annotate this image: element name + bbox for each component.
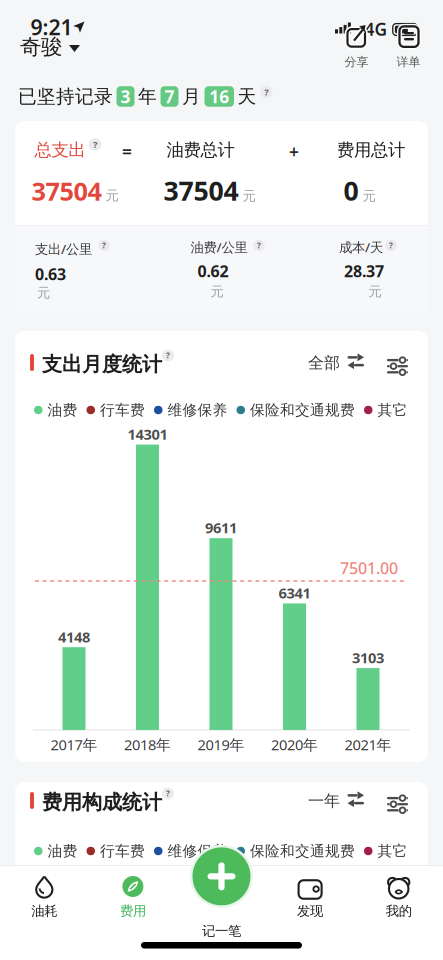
staticText: 保险和交通规费 — [250, 842, 355, 860]
button[interactable]: 说明 — [98, 240, 110, 251]
staticText: 其它 — [377, 401, 407, 419]
staticText: 成本/天 — [339, 238, 383, 256]
staticText: 已坚持记录 — [18, 85, 113, 108]
button[interactable]: 说明 — [162, 349, 174, 361]
staticText: 月 — [182, 85, 201, 108]
staticText: 3103 — [352, 648, 384, 667]
staticText: 分享 — [344, 55, 368, 69]
staticText: ? — [389, 240, 393, 251]
staticText: 天 — [237, 85, 256, 108]
staticText: 年 — [138, 85, 157, 108]
staticText: 37504 — [31, 174, 101, 208]
staticText: 油耗 — [31, 903, 57, 919]
staticText: 元 — [362, 188, 375, 204]
staticText: 行车费 — [100, 401, 145, 419]
button[interactable]: 全部 — [308, 353, 340, 373]
staticText: 费用 — [120, 903, 146, 919]
staticText: 奇骏 — [20, 34, 62, 60]
staticText: ? — [102, 240, 106, 251]
button[interactable]: 说明 — [260, 86, 272, 98]
staticText: 支出月度统计 — [42, 352, 162, 377]
staticText: 28.37 — [344, 260, 384, 282]
staticText: 0.62 — [197, 260, 228, 282]
staticText: 总支出 — [34, 139, 85, 161]
button[interactable]: 奇骏 — [20, 34, 80, 60]
button[interactable]: 说明 — [253, 240, 265, 251]
staticText: 详单 — [396, 55, 420, 69]
button[interactable]: 说明 — [89, 138, 101, 151]
staticText: 6341 — [278, 583, 310, 603]
staticText: 元 — [242, 188, 255, 204]
staticText: 维修保养 — [167, 401, 227, 419]
staticText: 37504 — [163, 173, 238, 208]
staticText: 油费 — [47, 842, 77, 860]
staticText: 4G — [364, 17, 387, 40]
staticText: 费用总计 — [337, 139, 405, 161]
staticText: 元 — [37, 284, 50, 301]
staticText: ? — [264, 86, 268, 98]
staticText: 元 — [105, 187, 118, 204]
staticText: 油费/公里 — [190, 238, 247, 256]
staticText: 维修保养 — [167, 842, 227, 860]
staticText: 行车费 — [100, 842, 145, 860]
staticText: 3 — [120, 85, 130, 108]
button[interactable]: 说明 — [385, 240, 397, 251]
staticText: 一年 — [308, 791, 340, 811]
button[interactable]: 筛选 — [387, 793, 408, 808]
staticText: 4148 — [58, 627, 90, 646]
button[interactable]: 我的 — [367, 875, 431, 923]
staticText: 0.63 — [35, 263, 66, 285]
button[interactable]: 分享 — [344, 24, 368, 69]
button[interactable]: 发现 — [278, 875, 342, 923]
staticText: 保险和交通规费 — [250, 401, 355, 419]
staticText: 2019年 — [197, 735, 244, 754]
staticText: 0 — [343, 173, 358, 208]
staticText: 元 — [210, 283, 223, 300]
staticText: 2018年 — [124, 735, 171, 754]
staticText: ? — [166, 350, 170, 361]
staticText: + — [289, 140, 299, 163]
staticText: 7501.00 — [340, 557, 398, 579]
staticText: 油费 — [47, 401, 77, 419]
staticText: 费用构成统计 — [42, 790, 162, 815]
button[interactable]: 切换 — [347, 791, 364, 808]
staticText: ? — [93, 138, 97, 151]
staticText: 7 — [164, 85, 174, 108]
button[interactable]: 说明 — [162, 787, 174, 799]
staticText: = — [122, 140, 132, 163]
staticText: 我的 — [386, 903, 412, 919]
staticText: 发现 — [297, 903, 323, 919]
staticText: 元 — [368, 283, 381, 300]
button[interactable]: 记一笔 — [188, 843, 254, 939]
staticText: 支出/公里 — [35, 240, 92, 258]
button[interactable]: 切换 — [347, 353, 364, 370]
staticText: 全部 — [308, 353, 340, 373]
staticText: 2021年 — [344, 735, 391, 754]
button[interactable]: 一年 — [308, 791, 340, 811]
staticText: 油费总计 — [166, 139, 234, 161]
button[interactable]: 详单 — [396, 24, 420, 69]
staticText: 14301 — [127, 424, 167, 444]
staticText: 其它 — [377, 842, 407, 860]
staticText: ? — [166, 788, 170, 799]
staticText: 16 — [209, 85, 229, 108]
staticText: 2020年 — [271, 735, 318, 754]
button[interactable]: 油耗 — [12, 875, 76, 923]
button[interactable]: 费用 — [101, 875, 165, 923]
staticText: ? — [257, 240, 261, 251]
staticText: 记一笔 — [202, 923, 241, 939]
button[interactable]: 筛选 — [387, 355, 408, 370]
staticText: 2017年 — [50, 735, 97, 754]
staticText: 9:21 — [30, 13, 72, 41]
staticText: 9611 — [205, 518, 237, 537]
